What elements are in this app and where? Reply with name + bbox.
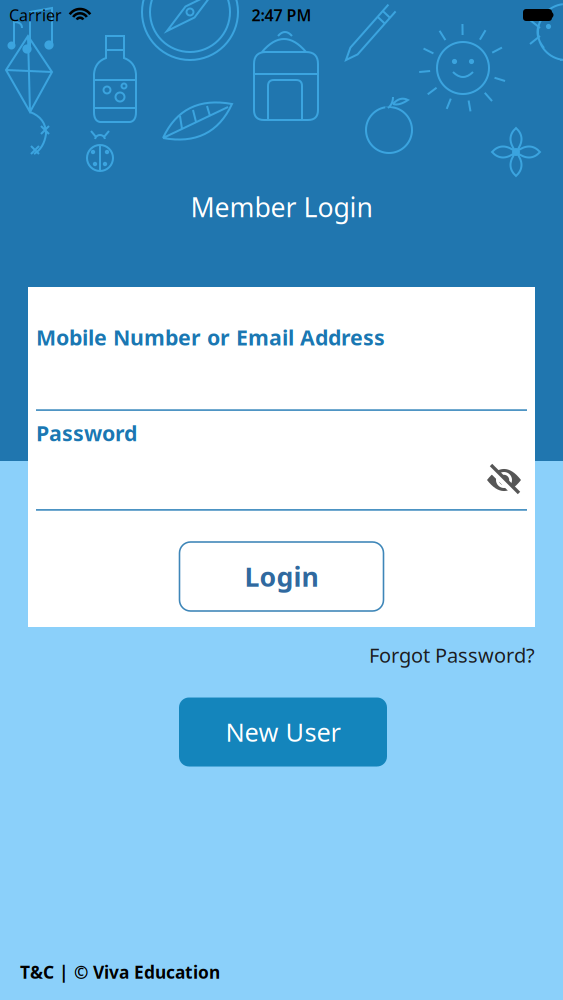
staticText: T&C | © Viva Education [20, 960, 220, 983]
button[interactable]: Forgot Password? [369, 642, 535, 668]
button[interactable]: Mobile Number or Email Address [36, 287, 527, 411]
staticText: Member Login [190, 189, 372, 225]
staticText: New User [225, 715, 340, 749]
button[interactable]: Password [36, 411, 527, 511]
staticText: 2:47 PM [251, 4, 311, 26]
button[interactable] [487, 467, 521, 493]
staticText: Login [244, 559, 318, 594]
button[interactable]: Login [179, 542, 383, 611]
staticText: Password [36, 419, 137, 447]
staticText: Carrier [9, 4, 62, 26]
staticText: Forgot Password? [369, 642, 535, 668]
staticText: Mobile Number or Email Address [36, 323, 385, 351]
button[interactable]: New User [179, 697, 387, 766]
